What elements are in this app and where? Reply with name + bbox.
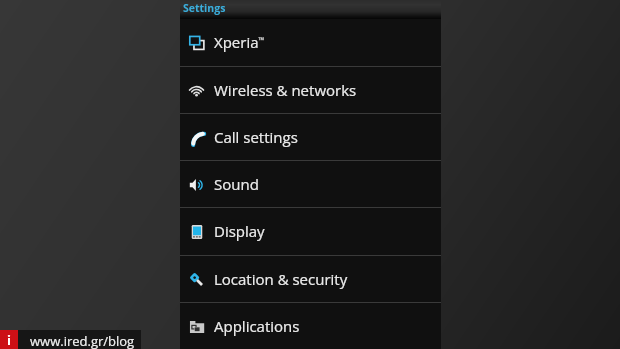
staticText: Wireless & networks <box>214 80 357 100</box>
staticText: Display <box>214 221 265 241</box>
staticText: Sound <box>214 174 259 194</box>
staticText: Xperia™ <box>214 32 265 52</box>
staticText: Settings <box>183 1 226 15</box>
button[interactable]: Applications <box>180 303 441 349</box>
button[interactable]: Display <box>180 208 441 255</box>
button[interactable]: Wireless & networks <box>180 67 441 114</box>
staticText: i <box>7 331 11 349</box>
button[interactable]: Sound <box>180 161 441 208</box>
staticText: Applications <box>214 316 300 336</box>
button[interactable]: Location & security <box>180 256 441 303</box>
button[interactable]: Call settings <box>180 114 441 161</box>
staticText: www.ired.gr/blog <box>30 332 135 349</box>
staticText: Call settings <box>214 127 298 147</box>
button[interactable]: Xperia™ <box>180 19 441 66</box>
staticText: Location & security <box>214 269 348 289</box>
